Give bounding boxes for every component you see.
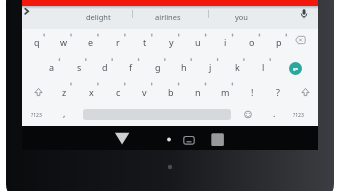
staticText: z bbox=[62, 86, 67, 98]
staticText: k bbox=[235, 61, 240, 73]
button[interactable]: d bbox=[93, 56, 117, 78]
staticText: . bbox=[273, 107, 276, 119]
button[interactable]: k bbox=[225, 56, 249, 78]
staticText: h bbox=[181, 61, 187, 73]
staticText: t bbox=[143, 36, 147, 48]
button[interactable] bbox=[285, 31, 311, 53]
staticText: e bbox=[88, 36, 94, 48]
staticText: ?123 bbox=[31, 112, 42, 119]
button[interactable]: go bbox=[289, 62, 302, 75]
button[interactable] bbox=[26, 80, 52, 102]
staticText: ? bbox=[276, 86, 280, 98]
staticText: ! bbox=[251, 86, 254, 98]
button[interactable]: h bbox=[172, 56, 196, 78]
button[interactable]: n bbox=[186, 81, 210, 103]
staticText: n bbox=[195, 86, 201, 98]
staticText: r bbox=[116, 36, 120, 48]
button[interactable]: airlines bbox=[140, 7, 196, 26]
button[interactable]: x bbox=[79, 81, 103, 103]
staticText: s bbox=[77, 61, 82, 73]
button[interactable]: . bbox=[265, 103, 283, 123]
staticText: , bbox=[63, 107, 66, 119]
button[interactable]: c bbox=[106, 81, 130, 103]
staticText: a bbox=[49, 61, 55, 73]
staticText: o bbox=[249, 36, 255, 48]
staticText: d bbox=[102, 61, 108, 73]
button[interactable]: i bbox=[213, 31, 237, 53]
staticText: y bbox=[169, 36, 174, 48]
button[interactable]: q bbox=[25, 31, 49, 53]
staticText: f bbox=[129, 61, 133, 73]
button[interactable]: ? bbox=[266, 81, 290, 103]
button[interactable]: y bbox=[159, 31, 183, 53]
button[interactable]: u bbox=[186, 31, 210, 53]
button[interactable]: a bbox=[40, 56, 64, 78]
button[interactable] bbox=[158, 128, 180, 150]
button[interactable]: delight bbox=[69, 7, 127, 26]
staticText: g bbox=[155, 61, 161, 73]
staticText: ?123 bbox=[293, 112, 304, 119]
button[interactable] bbox=[178, 128, 200, 150]
button[interactable]: e bbox=[79, 31, 103, 53]
button[interactable]: o bbox=[240, 31, 264, 53]
button[interactable] bbox=[236, 104, 260, 124]
button[interactable]: f bbox=[119, 56, 143, 78]
button[interactable]: ?123 bbox=[285, 105, 311, 125]
button[interactable]: v bbox=[132, 81, 156, 103]
staticText: go bbox=[293, 66, 299, 71]
staticText: delight bbox=[86, 12, 111, 22]
staticText: airlines bbox=[155, 12, 181, 22]
staticText: j bbox=[209, 61, 212, 73]
staticText: u bbox=[195, 36, 201, 48]
button[interactable]: z bbox=[52, 81, 76, 103]
button[interactable]: p bbox=[267, 31, 291, 53]
button[interactable] bbox=[108, 128, 136, 150]
button[interactable]: b bbox=[159, 81, 183, 103]
button[interactable]: j bbox=[198, 56, 222, 78]
button[interactable]: t bbox=[133, 31, 157, 53]
staticText: m bbox=[221, 86, 230, 98]
staticText: c bbox=[116, 86, 121, 98]
button[interactable] bbox=[293, 80, 319, 102]
staticText: you bbox=[235, 12, 248, 22]
button[interactable]: s bbox=[67, 56, 91, 78]
button[interactable]: l bbox=[251, 56, 275, 78]
staticText: p bbox=[276, 36, 282, 48]
staticText: x bbox=[89, 86, 94, 98]
staticText: l bbox=[262, 61, 265, 73]
staticText: b bbox=[168, 86, 174, 98]
button[interactable]: w bbox=[52, 31, 76, 53]
button[interactable]: g bbox=[146, 56, 170, 78]
button[interactable]: r bbox=[106, 31, 130, 53]
button[interactable]: ! bbox=[240, 81, 264, 103]
button[interactable]: m bbox=[213, 81, 237, 103]
staticText: q bbox=[34, 36, 40, 48]
button[interactable]: ?123 bbox=[23, 105, 49, 125]
staticText: v bbox=[142, 86, 147, 98]
staticText: w bbox=[60, 36, 68, 48]
button[interactable] bbox=[206, 128, 230, 150]
button[interactable]: you bbox=[216, 7, 266, 26]
button[interactable]: , bbox=[54, 103, 74, 123]
staticText: i bbox=[224, 36, 227, 48]
